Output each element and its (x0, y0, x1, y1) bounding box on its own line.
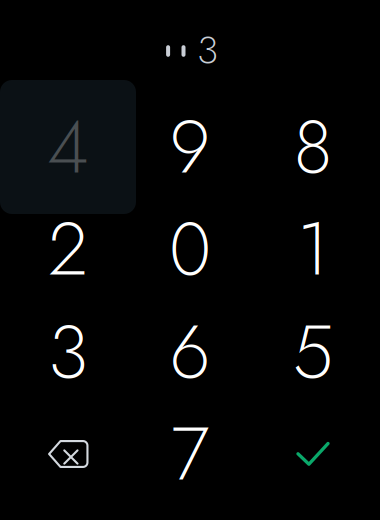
button[interactable]: 0 (129, 198, 251, 300)
button[interactable]: 9 (129, 96, 251, 198)
staticText: 9 (169, 94, 210, 200)
button[interactable]: 3 (7, 301, 129, 403)
button[interactable]: 1 (252, 198, 374, 300)
button[interactable]: 7 (129, 403, 251, 505)
staticText: 3 (197, 22, 218, 78)
staticText: 0 (169, 196, 211, 302)
staticText: 2 (48, 196, 88, 302)
button[interactable]: Confirm (252, 403, 374, 505)
button[interactable]: 8 (252, 96, 374, 198)
staticText: 6 (169, 299, 210, 405)
staticText: 7 (171, 401, 209, 507)
staticText: 1 (297, 196, 329, 302)
staticText: 8 (293, 94, 332, 200)
button[interactable]: 2 (7, 198, 129, 300)
staticText: 4 (47, 94, 89, 200)
staticText: 3 (48, 299, 88, 405)
staticText: 5 (292, 299, 333, 405)
button[interactable]: 5 (252, 301, 374, 403)
button[interactable]: Delete (7, 403, 129, 505)
button[interactable]: 6 (129, 301, 251, 403)
button[interactable]: 4 (0, 80, 136, 214)
